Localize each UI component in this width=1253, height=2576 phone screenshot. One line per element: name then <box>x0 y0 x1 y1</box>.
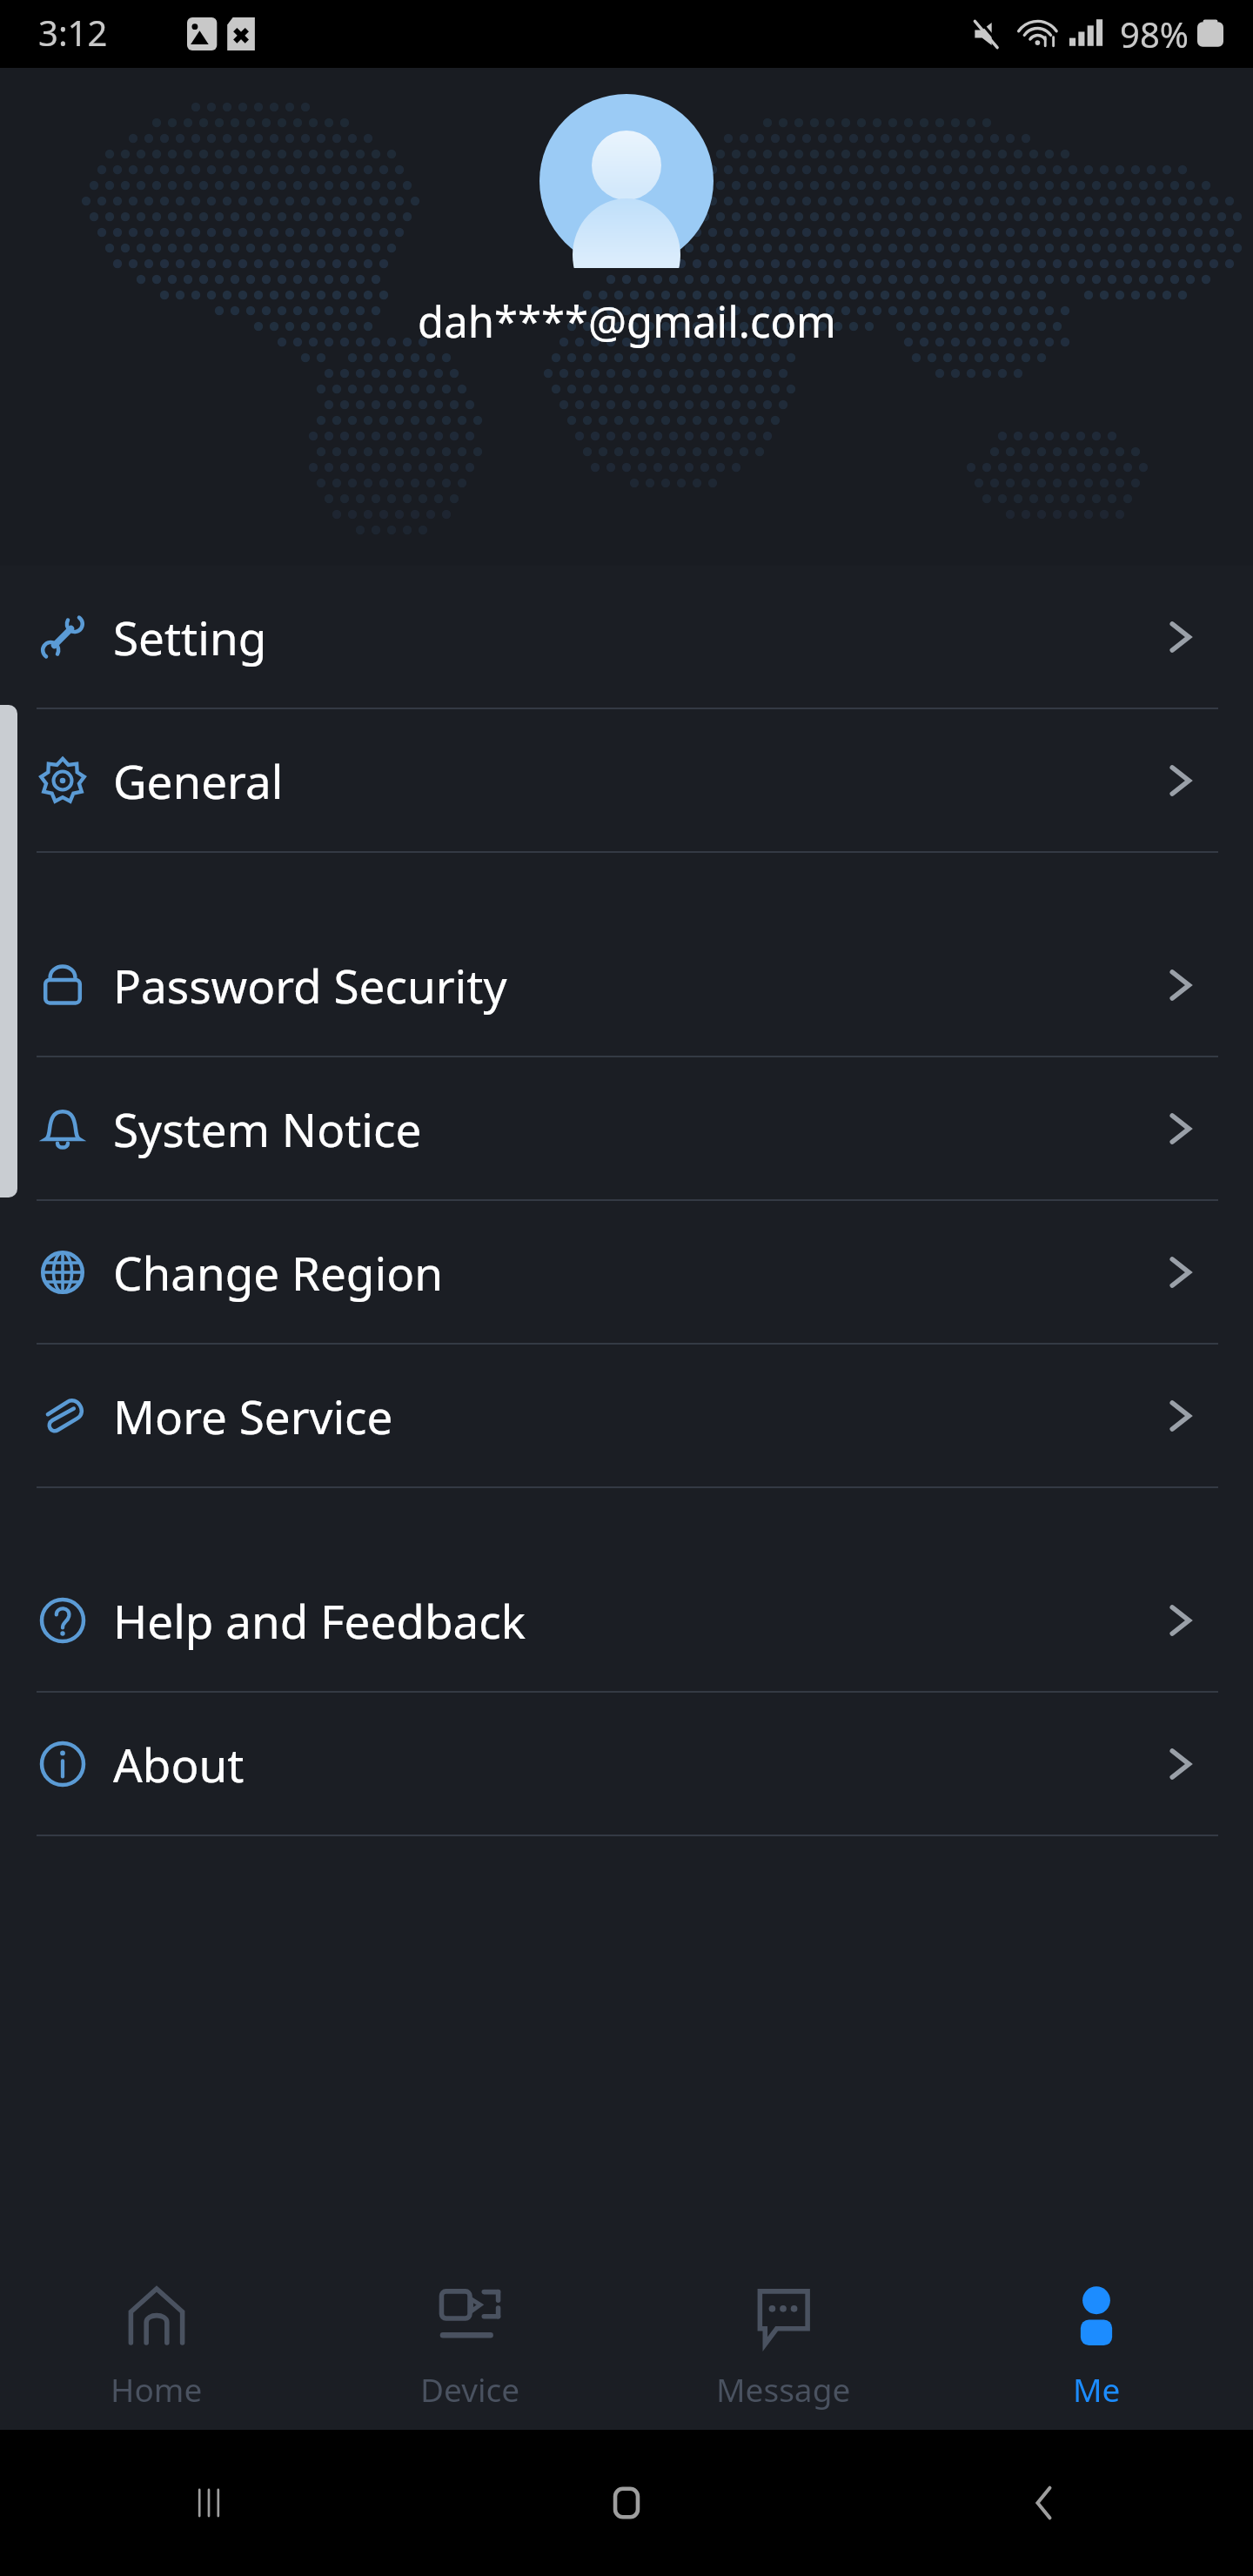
other: Setting <box>1157 614 1203 660</box>
other: System Notice <box>1157 1106 1203 1151</box>
staticText: dah****@gmail.com <box>418 292 836 351</box>
other: More Service <box>1157 1393 1203 1439</box>
staticText: Help and Feedback <box>113 1589 526 1652</box>
other: About <box>1157 1741 1203 1787</box>
other: Back <box>1021 2479 1068 2526</box>
button[interactable]: Password Security <box>0 914 1253 1056</box>
button[interactable]: Device <box>313 2264 626 2430</box>
staticText: Password Security <box>113 954 507 1016</box>
button[interactable]: Home <box>0 2264 313 2430</box>
other: Change Region <box>1157 1250 1203 1295</box>
other: Recents <box>185 2479 232 2526</box>
staticText: About <box>113 1733 245 1795</box>
staticText: Me <box>1073 2367 1121 2411</box>
staticText: Device <box>420 2367 520 2411</box>
other: Password Security <box>1157 963 1203 1008</box>
staticText: Message <box>716 2367 851 2411</box>
button[interactable]: About <box>0 1693 1253 1835</box>
staticText: System Notice <box>113 1097 422 1160</box>
button[interactable]: General <box>0 709 1253 851</box>
staticText: Setting <box>113 606 267 668</box>
button[interactable]: More Service <box>0 1345 1253 1486</box>
other: General <box>1157 758 1203 803</box>
staticText: 98% <box>1120 10 1189 57</box>
button[interactable]: System Notice <box>0 1057 1253 1199</box>
button[interactable]: Message <box>626 2264 940 2430</box>
staticText: Home <box>111 2367 203 2411</box>
staticText: General <box>113 749 284 812</box>
staticText: More Service <box>113 1385 393 1447</box>
other: Help and Feedback <box>1157 1598 1203 1643</box>
staticText: 3:12 <box>38 9 108 56</box>
button[interactable]: Help and Feedback <box>0 1549 1253 1691</box>
staticText: Change Region <box>113 1241 443 1304</box>
button[interactable]: Me <box>940 2264 1253 2430</box>
other: Home <box>603 2479 650 2526</box>
button[interactable]: Change Region <box>0 1201 1253 1343</box>
button[interactable]: Setting <box>0 566 1253 708</box>
